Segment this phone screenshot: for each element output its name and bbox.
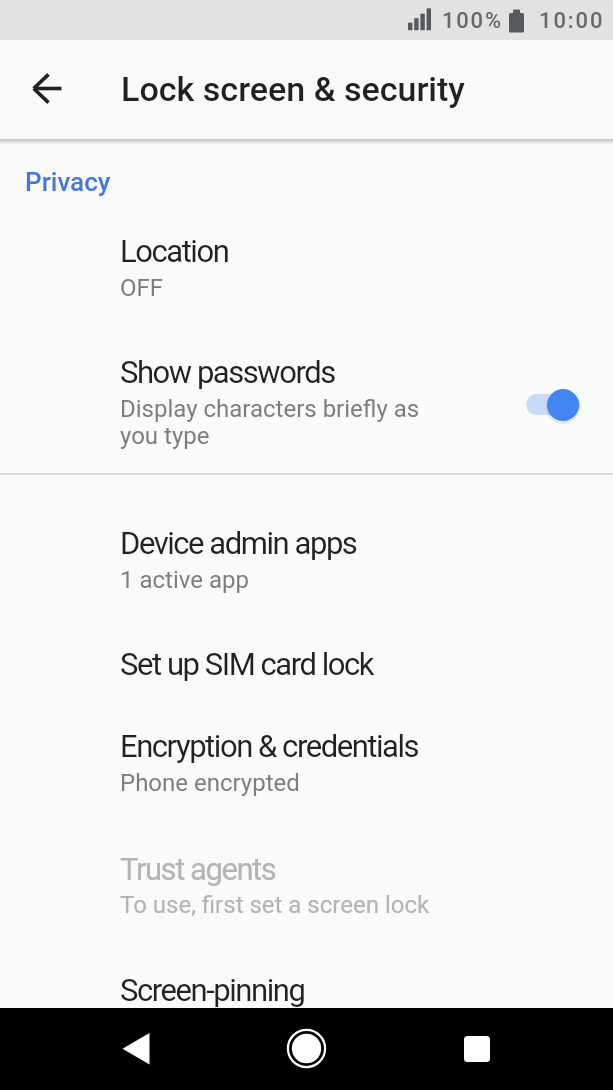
staticText: Phone encrypted [120,769,300,797]
staticText: Screen-pinning [120,972,305,1008]
staticText: you type [120,422,210,450]
button[interactable] [118,1028,154,1068]
staticText: 100% [442,8,503,34]
staticText: Device admin apps [120,525,357,561]
button[interactable] [286,1028,327,1069]
staticText: Show passwords [120,354,335,390]
staticText: OFF [120,274,164,302]
staticText: Display characters briefly as [120,395,420,423]
staticText: Encryption & credentials [120,728,419,764]
button[interactable]: Location [0,209,613,325]
staticText: To use, first set a screen lock [120,891,430,919]
button[interactable]: Encryption & credentials [0,703,613,818]
button[interactable]: Show passwords [0,330,613,458]
button[interactable] [30,70,67,107]
staticText: 1 active app [120,566,249,594]
staticText: Lock screen & security [121,69,465,109]
staticText: Privacy [25,167,111,197]
staticText: Trust agents [120,851,276,887]
button[interactable]: Screen-pinning [0,947,613,1008]
staticText: Location [120,233,229,269]
button[interactable] [464,1036,490,1062]
button[interactable]: Trust agents [0,826,613,940]
staticText: 10:00 [539,8,605,34]
button[interactable]: Set up SIM card lock [0,620,613,705]
staticText: Set up SIM card lock [120,646,374,682]
button[interactable]: Device admin apps [0,500,613,615]
